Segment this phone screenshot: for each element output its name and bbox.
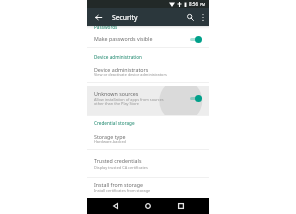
- staticText: Hardware-backed: [94, 139, 126, 144]
- button[interactable]: Recent apps: [171, 198, 191, 214]
- staticText: Storage type: [94, 133, 126, 140]
- button[interactable]: [87, 130, 209, 146]
- staticText: Allow installation of apps from sources: [94, 97, 164, 102]
- button[interactable]: Search: [184, 11, 197, 24]
- button[interactable]: Home: [138, 198, 158, 214]
- staticText: Display trusted CA certificates: [94, 165, 148, 170]
- staticText: Device administration: [94, 54, 142, 60]
- staticText: Unknown sources: [94, 90, 139, 97]
- staticText: 8:56: [189, 1, 199, 7]
- button[interactable]: [87, 179, 209, 195]
- button[interactable]: More options: [197, 12, 208, 23]
- staticText: Device administrators: [94, 66, 149, 73]
- staticText: Credential storage: [94, 120, 135, 126]
- staticText: Security: [112, 13, 138, 22]
- staticText: Trusted credentials: [94, 157, 142, 164]
- staticText: Passwords: [94, 24, 118, 30]
- staticText: View or deactivate device administrators: [94, 72, 167, 77]
- staticText: Make passwords visible: [94, 35, 153, 42]
- staticText: Install from storage: [94, 181, 143, 188]
- staticText: PM: [200, 2, 206, 7]
- staticText: other than the Play Store: [94, 101, 140, 106]
- button[interactable]: [87, 86, 209, 115]
- staticText: Install certificates from storage: [94, 188, 151, 193]
- button[interactable]: [87, 154, 209, 170]
- button[interactable]: [87, 29, 209, 45]
- button[interactable]: [87, 64, 209, 80]
- button[interactable]: Navigate up: [91, 10, 105, 24]
- button[interactable]: Back: [105, 198, 125, 214]
